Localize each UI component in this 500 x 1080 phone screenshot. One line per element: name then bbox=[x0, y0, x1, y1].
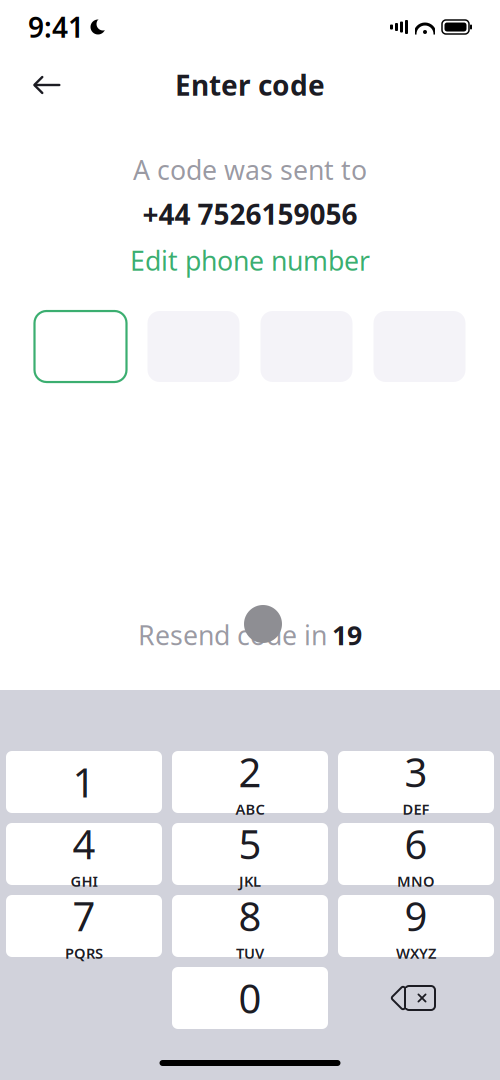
button[interactable]: 0 bbox=[172, 967, 328, 1029]
button[interactable]: Back bbox=[20, 58, 74, 112]
button[interactable]: Code digit bbox=[34, 311, 126, 382]
staticText: 7 bbox=[72, 889, 95, 942]
button[interactable]: 2 bbox=[172, 751, 328, 813]
staticText: PQRS bbox=[65, 943, 103, 963]
button[interactable]: 7 bbox=[6, 895, 162, 957]
button[interactable]: 9 bbox=[338, 895, 494, 957]
staticText: ABC bbox=[235, 799, 264, 819]
staticText: 6 bbox=[404, 817, 427, 870]
staticText: Resend code in bbox=[138, 617, 327, 653]
button[interactable]: Delete bbox=[338, 967, 494, 1029]
button[interactable]: 4 bbox=[6, 823, 162, 885]
staticText: MNO bbox=[397, 871, 435, 891]
button[interactable]: 6 bbox=[338, 823, 494, 885]
staticText: GHI bbox=[70, 871, 97, 891]
staticText: TUV bbox=[236, 943, 264, 963]
staticText: 2 bbox=[238, 745, 261, 798]
staticText: 1 bbox=[72, 755, 95, 808]
staticText: 9 bbox=[404, 889, 427, 942]
staticText: A code was sent to bbox=[133, 152, 367, 187]
staticText: 4 bbox=[72, 817, 95, 870]
staticText: 0 bbox=[238, 971, 261, 1024]
staticText: 19 bbox=[332, 617, 362, 653]
staticText: DEF bbox=[402, 799, 429, 819]
button[interactable]: 5 bbox=[172, 823, 328, 885]
staticText: Enter code bbox=[175, 66, 325, 104]
staticText: 9:41 bbox=[28, 8, 84, 46]
staticText: 5 bbox=[238, 817, 261, 870]
staticText: 3 bbox=[404, 745, 427, 798]
staticText: WXYZ bbox=[396, 943, 436, 963]
button[interactable]: 1 bbox=[6, 751, 162, 813]
staticText: JKL bbox=[239, 871, 261, 891]
staticText: Edit phone number bbox=[130, 243, 370, 278]
button[interactable]: 3 bbox=[338, 751, 494, 813]
button[interactable]: Edit phone number bbox=[130, 241, 370, 280]
staticText: +44 7526159056 bbox=[142, 195, 357, 233]
staticText: 8 bbox=[238, 889, 261, 942]
button[interactable]: 8 bbox=[172, 895, 328, 957]
